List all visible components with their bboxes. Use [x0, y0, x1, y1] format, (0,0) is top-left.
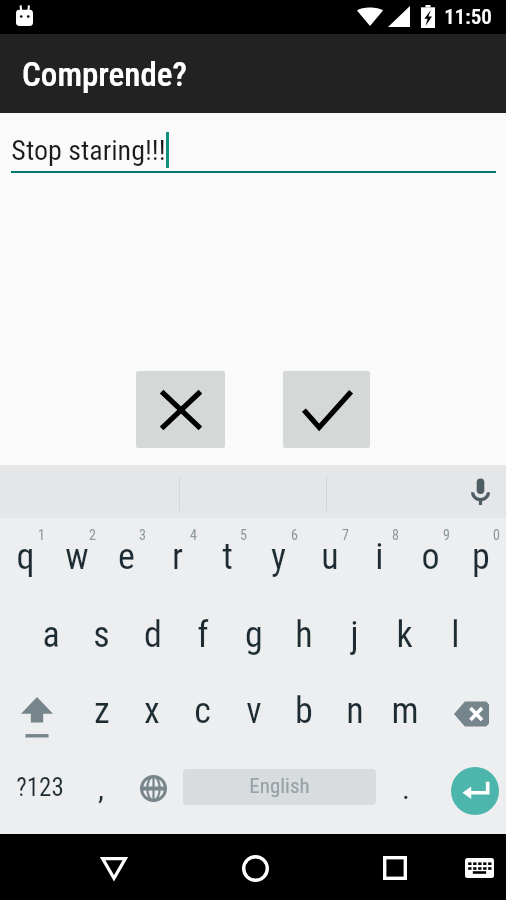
staticText: 7 [342, 527, 349, 543]
button[interactable]: b [278, 676, 329, 750]
button[interactable]: Change language [124, 750, 180, 830]
button[interactable]: 4 [152, 518, 203, 602]
button[interactable]: v [228, 676, 279, 750]
staticText: m [391, 690, 419, 732]
button[interactable]: z [76, 676, 127, 750]
button[interactable]: 3 [101, 518, 152, 602]
button[interactable]: 9 [405, 518, 456, 602]
staticText: . [402, 771, 410, 806]
staticText: 0 [493, 527, 500, 543]
staticText: q [16, 536, 35, 578]
staticText: 3 [139, 527, 146, 543]
button[interactable]: 6 [253, 518, 304, 602]
staticText: e [118, 536, 135, 578]
staticText: , [98, 771, 104, 806]
button[interactable]: Back [79, 834, 149, 900]
button[interactable]: j [329, 602, 380, 676]
staticText: Stop staring!!! [11, 134, 166, 167]
staticText: o [421, 536, 440, 578]
staticText: r [172, 536, 183, 578]
staticText: 4 [190, 527, 197, 543]
staticText: 6 [291, 527, 298, 543]
staticText: k [396, 614, 413, 656]
button[interactable]: . [378, 750, 430, 830]
staticText: b [295, 690, 313, 732]
button[interactable]: m [379, 676, 430, 750]
button[interactable]: No [136, 371, 225, 448]
button[interactable]: g [228, 602, 279, 676]
button[interactable]: Switch keyboard [450, 834, 506, 900]
button[interactable]: n [329, 676, 380, 750]
staticText: a [42, 614, 60, 656]
button[interactable]: 8 [354, 518, 405, 602]
staticText: u [321, 536, 339, 578]
button[interactable]: Home [220, 834, 290, 900]
staticText: 2 [89, 527, 96, 543]
staticText: g [245, 614, 263, 656]
staticText: 8 [392, 527, 399, 543]
staticText: 9 [443, 527, 450, 543]
button[interactable]: Yes [283, 371, 370, 448]
staticText: English [249, 774, 310, 799]
button[interactable]: 2 [51, 518, 102, 602]
button[interactable]: 0 [455, 518, 506, 602]
staticText: w [65, 536, 89, 578]
button[interactable]: Backspace [430, 676, 506, 750]
staticText: j [350, 614, 359, 656]
button[interactable]: f [177, 602, 228, 676]
button[interactable]: Enter [430, 750, 506, 830]
staticText: ?123 [16, 773, 64, 802]
staticText: h [295, 614, 313, 656]
staticText: d [144, 614, 162, 656]
button[interactable]: 7 [304, 518, 355, 602]
button[interactable]: h [278, 602, 329, 676]
button[interactable]: 5 [202, 518, 253, 602]
staticText: s [93, 614, 110, 656]
staticText: i [375, 536, 384, 578]
button[interactable]: Recents [360, 834, 430, 900]
button[interactable]: s [76, 602, 127, 676]
button[interactable]: x [126, 676, 177, 750]
button[interactable]: 1 [0, 518, 51, 602]
button[interactable]: English [180, 750, 378, 830]
staticText: c [194, 690, 211, 732]
button[interactable]: ?123 [0, 750, 78, 830]
staticText: l [451, 614, 460, 656]
button[interactable]: Voice input [452, 465, 506, 518]
staticText: Comprende? [22, 55, 187, 94]
staticText: v [246, 690, 262, 732]
staticText: 5 [240, 527, 247, 543]
staticText: 11:50 [444, 5, 492, 30]
staticText: 1 [38, 527, 45, 543]
staticText: n [346, 690, 364, 732]
button[interactable]: d [127, 602, 178, 676]
staticText: y [271, 536, 286, 578]
staticText: x [144, 690, 160, 732]
staticText: z [94, 690, 110, 732]
staticText: f [197, 614, 209, 656]
button[interactable]: c [177, 676, 228, 750]
button[interactable]: l [430, 602, 481, 676]
button[interactable]: , [78, 750, 124, 830]
button[interactable]: a [25, 602, 76, 676]
staticText: p [472, 536, 490, 578]
button[interactable]: Shift [0, 676, 76, 750]
button[interactable]: k [379, 602, 430, 676]
staticText: t [222, 536, 233, 578]
